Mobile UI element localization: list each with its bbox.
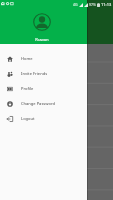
staticText: Change Password (21, 101, 56, 106)
staticText: Invite Friends (21, 71, 48, 76)
staticText: 4G (73, 2, 78, 7)
button[interactable]: Invite Friends (0, 66, 87, 81)
button[interactable]: Profile header, Ruwan (0, 0, 87, 44)
staticText: 11:13 (101, 2, 112, 7)
button[interactable]: Logout (0, 111, 87, 126)
staticText: Home (21, 56, 33, 61)
staticText: Profile (21, 86, 34, 91)
staticText: 97% (89, 2, 96, 7)
staticText: Logout (21, 116, 35, 121)
button[interactable]: Change Password (0, 96, 87, 111)
button[interactable]: Home (0, 51, 87, 66)
staticText: Ruwan (33, 37, 51, 43)
button[interactable]: Profile (0, 81, 87, 96)
